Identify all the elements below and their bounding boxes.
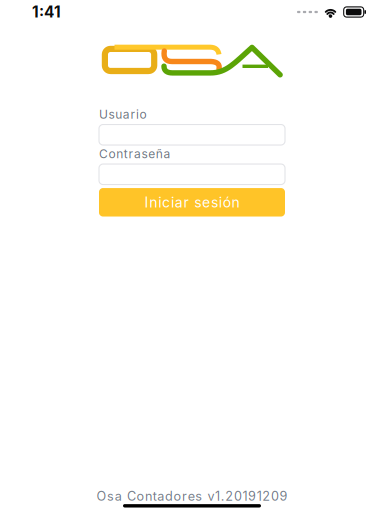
staticText: 1:41 — [32, 3, 61, 21]
button[interactable]: Usuario — [99, 124, 285, 145]
button[interactable]: Iniciar sesión — [99, 188, 285, 216]
staticText: Osa Contadores v1.20191209 — [96, 488, 287, 504]
staticText: Iniciar sesión — [144, 194, 239, 211]
staticText: Usuario — [99, 107, 147, 121]
button[interactable]: Contraseña — [99, 164, 285, 184]
staticText: Contraseña — [99, 146, 170, 161]
